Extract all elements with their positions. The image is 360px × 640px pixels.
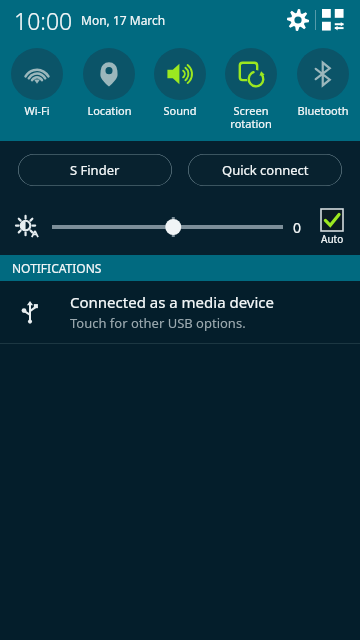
button[interactable]: Location xyxy=(75,48,143,118)
staticText: Mon, 17 March xyxy=(81,12,166,28)
button[interactable]: Settings xyxy=(281,3,315,37)
staticText: Wi-Fi xyxy=(24,103,50,118)
staticText: Quick connect xyxy=(222,161,309,179)
button[interactable]: Auto xyxy=(312,209,352,246)
staticText: Auto xyxy=(321,232,344,246)
button[interactable]: Bluetooth xyxy=(289,48,357,118)
button[interactable]: S Finder xyxy=(18,154,172,186)
staticText: 10:00 xyxy=(14,5,73,36)
staticText: Location xyxy=(87,103,132,118)
button[interactable]: Connected as a media device xyxy=(0,281,360,344)
button[interactable]: Screen rotation xyxy=(217,48,285,131)
button[interactable]: Sound xyxy=(146,48,214,118)
staticText: 0 xyxy=(293,218,302,237)
button[interactable]: Quick connect xyxy=(188,154,342,186)
staticText: Sound xyxy=(163,103,197,118)
staticText: Connected as a media device xyxy=(70,292,275,312)
staticText: Screen rotation xyxy=(230,103,272,131)
staticText: S Finder xyxy=(70,161,120,179)
staticText: Touch for other USB options. xyxy=(70,314,246,332)
button[interactable]: Edit quick settings xyxy=(316,3,350,37)
staticText: Bluetooth xyxy=(297,103,349,118)
staticText: NOTIFICATIONS xyxy=(12,260,102,276)
button[interactable]: Wi-Fi xyxy=(3,48,71,118)
